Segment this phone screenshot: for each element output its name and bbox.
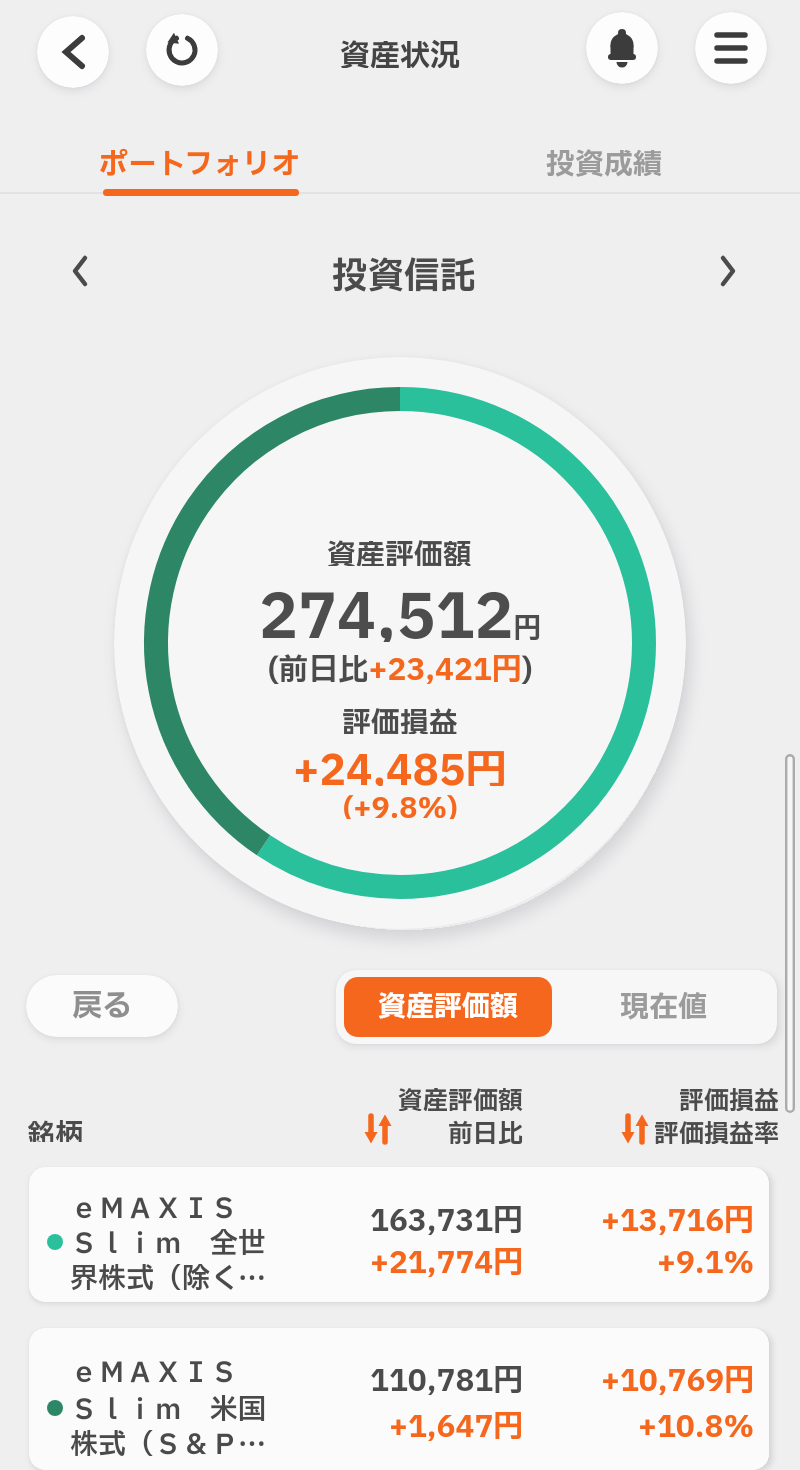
staticText: 163,731円 (370, 1199, 524, 1235)
button[interactable]: 投資成績 (504, 143, 704, 181)
staticText: 銘柄 (27, 1114, 84, 1142)
staticText: 資産状況 (340, 34, 460, 68)
button[interactable] (586, 12, 658, 84)
staticText: 界株式（除く… (70, 1258, 267, 1296)
staticText: 評価損益 (342, 702, 459, 734)
staticText: (+9.8%) (343, 787, 458, 819)
button[interactable] (60, 251, 100, 291)
staticText: +13,716円 (601, 1199, 755, 1235)
staticText: +21,774円 (370, 1241, 524, 1277)
staticText: Ｓｌｉｍ 米国 (70, 1389, 267, 1427)
button[interactable] (695, 12, 767, 84)
button[interactable]: 戻る (26, 975, 178, 1037)
staticText: 資産評価額 (378, 986, 519, 1028)
button[interactable]: 現在値 (560, 977, 768, 1037)
staticText: 前日比 (448, 1116, 524, 1144)
staticText: 資産評価額 (327, 534, 473, 566)
staticText: +10,769円 (601, 1359, 755, 1395)
staticText: +1,647円 (389, 1405, 524, 1441)
button[interactable] (146, 14, 218, 86)
staticText: ｅＭＡＸＩＳ (70, 1188, 239, 1226)
staticText: +10.8% (638, 1405, 755, 1441)
staticText: 投資成績 (546, 143, 663, 181)
staticText: 戻る (72, 984, 132, 1029)
staticText: 110,781円 (370, 1359, 524, 1395)
staticText: ポートフォリオ (99, 143, 301, 181)
staticText: 投資信託 (332, 250, 477, 294)
button[interactable] (37, 16, 109, 88)
button[interactable]: 資産評価額 (344, 977, 552, 1037)
staticText: +9.1% (657, 1241, 755, 1277)
staticText: 現在値 (620, 986, 708, 1029)
button[interactable] (29, 1167, 769, 1302)
button[interactable]: ポートフォリオ (88, 143, 312, 181)
staticText: 評価損益 (679, 1083, 780, 1111)
staticText: ｅＭＡＸＩＳ (70, 1352, 239, 1390)
staticText: 資産評価額 (398, 1083, 524, 1111)
staticText: +24,485円 (293, 740, 508, 786)
staticText: (前日比+23,421円) (268, 648, 533, 684)
button[interactable] (708, 251, 748, 291)
staticText: Ｓｌｉｍ 全世 (70, 1223, 267, 1261)
button[interactable] (29, 1328, 769, 1470)
staticText: 274,512円 (259, 572, 542, 642)
staticText: 評価損益率 (654, 1116, 780, 1144)
staticText: 株式（Ｓ＆Ｐ… (70, 1424, 267, 1462)
